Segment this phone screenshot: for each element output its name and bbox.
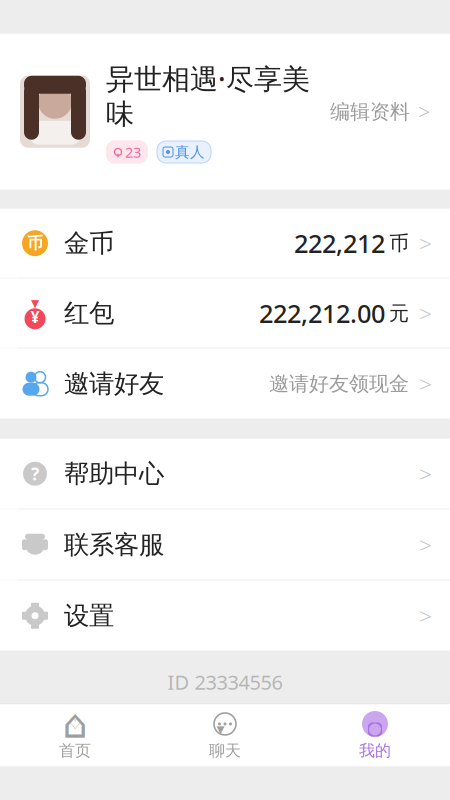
staticText: >: [419, 530, 432, 560]
staticText: 真人: [175, 143, 205, 161]
button[interactable]: ▾: [150, 704, 300, 766]
staticText: >: [419, 369, 432, 399]
staticText: 异世相遇·尽享美味: [106, 60, 310, 131]
staticText: >: [419, 298, 432, 328]
button[interactable]: ?: [0, 439, 450, 509]
staticText: ▾: [216, 720, 224, 738]
staticText: 邀请好友: [64, 368, 164, 399]
staticText: ⌂: [62, 701, 87, 747]
staticText: 币: [27, 233, 43, 253]
staticText: 我的: [359, 741, 391, 761]
button[interactable]: 币: [0, 209, 450, 278]
button[interactable]: 我的: [300, 704, 450, 766]
staticText: ¥: [30, 306, 39, 327]
staticText: 金币: [64, 228, 114, 259]
staticText: 聊天: [209, 741, 241, 761]
button[interactable]: 邀请好友: [0, 349, 450, 419]
staticText: ♡: [68, 716, 81, 732]
staticText: 设置: [64, 600, 114, 631]
staticText: 邀请好友领现金: [269, 371, 409, 396]
staticText: ID 23334556: [167, 669, 282, 695]
button[interactable]: 联系客服: [0, 510, 450, 580]
staticText: 红包: [64, 298, 114, 329]
staticText: >: [419, 601, 432, 631]
staticText: 222,212.00: [259, 296, 385, 330]
staticText: >: [419, 228, 432, 258]
staticText: 币: [389, 231, 409, 255]
staticText: 222,212: [294, 226, 385, 260]
staticText: 元: [389, 301, 409, 325]
staticText: 首页: [59, 741, 91, 761]
staticText: >: [418, 98, 430, 126]
staticText: 23: [125, 142, 141, 162]
button[interactable]: 异世相遇·尽享美味: [0, 34, 450, 190]
staticText: >: [419, 459, 432, 489]
staticText: 帮助中心: [64, 458, 164, 489]
button[interactable]: 设置: [0, 581, 450, 651]
button[interactable]: ⌂: [0, 704, 150, 766]
staticText: 编辑资料: [330, 99, 410, 124]
button[interactable]: ▼: [0, 279, 450, 348]
staticText: 联系客服: [64, 529, 164, 560]
staticText: ?: [31, 462, 39, 485]
staticText: ▼: [31, 297, 39, 309]
